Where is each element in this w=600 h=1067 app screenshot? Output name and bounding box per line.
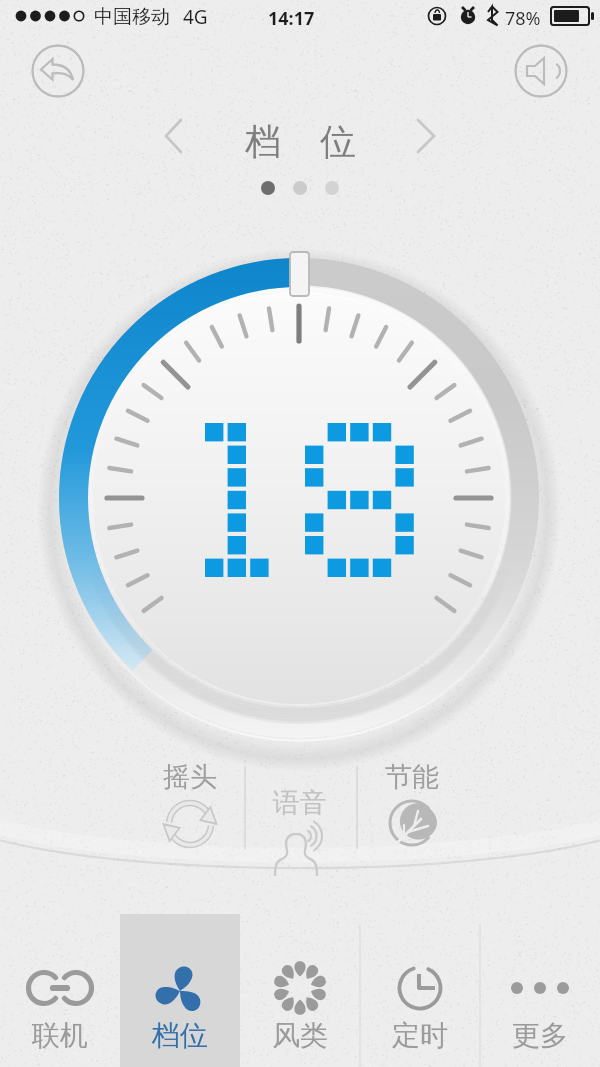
staticText: 档 (245, 119, 281, 164)
staticText: 定时 (392, 1018, 448, 1053)
button[interactable]: Next (396, 104, 460, 168)
button[interactable]: 定时 (360, 914, 480, 1067)
staticText: 4G (183, 4, 208, 30)
button[interactable]: 更多 (480, 914, 600, 1067)
button[interactable]: 档位 (120, 914, 240, 1067)
staticText: 风类 (272, 1018, 328, 1053)
staticText: 语音 (273, 786, 327, 820)
staticText: 档位 (152, 1018, 208, 1053)
button[interactable]: 风类 (240, 914, 360, 1067)
button[interactable]: Back (31, 44, 85, 98)
staticText: 摇头 (163, 760, 217, 794)
button[interactable]: 节能 (364, 760, 460, 864)
staticText: 节能 (385, 760, 439, 794)
button[interactable]: 摇头 (142, 760, 238, 864)
button[interactable]: 联机 (0, 914, 120, 1067)
staticText: 位 (320, 119, 356, 164)
staticText: 联机 (32, 1018, 88, 1053)
button[interactable]: Previous (144, 104, 208, 168)
button[interactable]: Sound (514, 44, 568, 98)
staticText: 更多 (512, 1018, 568, 1053)
staticText: 中国移动 (94, 5, 170, 29)
staticText: 78% (505, 6, 541, 31)
button[interactable]: 语音 (252, 786, 348, 890)
staticText: 14:17 (268, 6, 315, 31)
